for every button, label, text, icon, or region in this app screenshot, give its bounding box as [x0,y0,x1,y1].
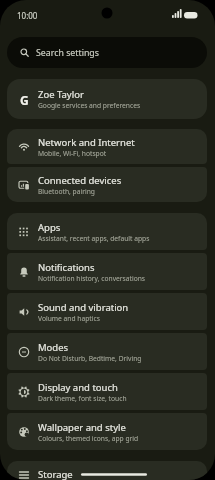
staticText: Search settings [36,47,99,59]
staticText: Connected devices [38,174,122,187]
staticText: Dark theme, font size, touch [38,394,127,403]
staticText: Colours, themed icons, app grid [38,434,139,443]
staticText: Bluetooth, pairing [38,187,95,196]
staticText: Zoe Taylor [38,88,84,101]
staticText: Sound and vibration [38,301,129,314]
button[interactable]: Storage [7,461,207,480]
button[interactable]: Wallpaper and style [7,413,207,450]
staticText: Apps [38,221,61,234]
button[interactable]: Sound and vibration [7,293,207,330]
button[interactable]: G [7,79,207,119]
button[interactable]: Apps [7,213,207,250]
staticText: Notification history, conversations [38,274,146,283]
staticText: Assistant, recent apps, default apps [38,234,150,243]
button[interactable]: Search settings [7,37,207,68]
button[interactable]: Network and Internet [7,129,207,164]
staticText: Do Not Disturb, Bedtime, Driving [38,354,142,363]
button[interactable]: Connected devices [7,167,207,202]
button[interactable]: Notifications [7,253,207,290]
staticText: Volume and haptics [38,314,100,323]
staticText: Mobile, Wi-Fi, hotspot [38,149,107,158]
button[interactable]: Modes [7,333,207,370]
staticText: Network and Internet [38,136,135,149]
button[interactable]: Display and touch [7,373,207,410]
staticText: 10:00 [17,10,38,21]
staticText: Wallpaper and style [38,421,126,434]
staticText: Google services and preferences [38,101,141,110]
staticText: G [20,92,29,106]
staticText: Storage [38,468,73,480]
staticText: Notifications [38,261,95,274]
staticText: Modes [38,341,69,354]
staticText: Display and touch [38,381,118,394]
